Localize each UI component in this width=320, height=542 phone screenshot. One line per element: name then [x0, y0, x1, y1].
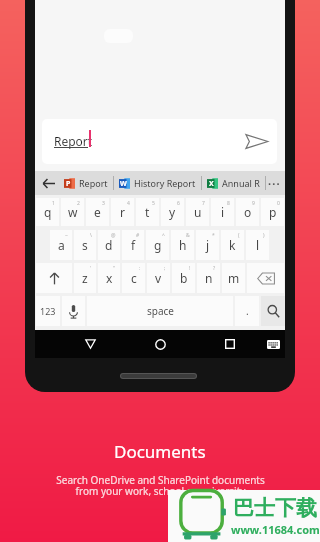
staticText: s	[82, 237, 88, 253]
staticText: j	[206, 237, 210, 253]
button[interactable]: o	[236, 198, 259, 226]
button[interactable]: .	[235, 296, 259, 326]
staticText: Report	[54, 133, 93, 149]
staticText: @	[111, 232, 116, 239]
staticText: k	[229, 237, 236, 253]
button[interactable]: c	[122, 263, 145, 293]
staticText: 8	[227, 200, 230, 207]
staticText: l	[256, 237, 260, 253]
button[interactable]: j	[196, 230, 219, 260]
staticText: W	[120, 179, 127, 189]
button[interactable]: m	[222, 263, 245, 293]
staticText: 6	[177, 200, 180, 207]
button[interactable]: W	[114, 171, 202, 195]
button[interactable]: a	[50, 230, 72, 260]
staticText: 3	[102, 200, 105, 207]
button[interactable]: n	[197, 263, 220, 293]
button[interactable]: x	[98, 263, 120, 293]
button[interactable]: space	[87, 296, 233, 326]
staticText: o	[244, 204, 252, 220]
staticText: &	[186, 232, 190, 239]
button[interactable]: k	[221, 230, 244, 260]
staticText: u	[194, 204, 202, 220]
staticText: 2	[77, 200, 80, 207]
staticText: 9	[252, 200, 255, 207]
staticText: p	[269, 204, 277, 220]
button[interactable]: z	[74, 263, 96, 293]
staticText: )	[263, 232, 265, 239]
button[interactable]: Backspace	[247, 263, 284, 293]
button[interactable]: P	[59, 171, 114, 195]
button[interactable]: p	[261, 198, 284, 226]
staticText: www.11684.com	[231, 522, 320, 537]
button[interactable]: f	[122, 230, 144, 260]
button[interactable]: r	[111, 198, 134, 226]
staticText: y	[169, 204, 176, 220]
staticText: c	[131, 270, 137, 286]
staticText: f	[131, 237, 136, 253]
staticText: x	[106, 270, 113, 286]
staticText: \	[90, 232, 92, 239]
staticText: *	[212, 232, 215, 239]
button[interactable]: 123	[36, 296, 60, 326]
staticText: ^	[162, 232, 165, 239]
staticText: w	[68, 204, 78, 220]
staticText: Annual R	[222, 177, 260, 189]
button[interactable]: y	[161, 198, 184, 226]
staticText: 7	[202, 200, 205, 207]
staticText: 123	[40, 305, 56, 317]
staticText: Documents	[114, 440, 206, 463]
button[interactable]: Recent apps	[219, 333, 241, 355]
staticText: n	[205, 270, 213, 286]
staticText: d	[105, 237, 113, 253]
staticText: 1	[52, 200, 55, 207]
button[interactable]: t	[136, 198, 159, 226]
button[interactable]: Switch keyboard	[263, 334, 283, 354]
button[interactable]: s	[74, 230, 96, 260]
staticText: h	[179, 237, 187, 253]
staticText: Report	[79, 177, 108, 189]
staticText: 4	[127, 200, 130, 207]
button[interactable]: More suggestions	[266, 171, 282, 195]
button[interactable]: l	[246, 230, 269, 260]
button[interactable]: Voice input	[62, 296, 85, 326]
button[interactable]: u	[186, 198, 209, 226]
button[interactable]: w	[61, 198, 84, 226]
button[interactable]: Home	[149, 333, 171, 355]
button[interactable]: Shift	[36, 263, 72, 293]
staticText: v	[155, 270, 162, 286]
button[interactable]: g	[146, 230, 169, 260]
staticText: r	[120, 204, 125, 220]
button[interactable]: Back	[79, 333, 101, 355]
staticText: ;	[164, 265, 166, 272]
staticText: b	[180, 270, 188, 286]
staticText: e	[94, 204, 101, 220]
staticText: (	[238, 232, 240, 239]
button[interactable]: q	[36, 198, 59, 226]
staticText: History Report	[134, 177, 196, 189]
button[interactable]: d	[98, 230, 120, 260]
button[interactable]: v	[147, 263, 170, 293]
staticText: m	[228, 270, 240, 286]
button[interactable]: Send	[239, 131, 273, 152]
button[interactable]: Search	[261, 296, 285, 326]
staticText: g	[154, 237, 162, 253]
staticText: i	[221, 204, 225, 220]
staticText: a	[58, 237, 65, 253]
button[interactable]: X	[202, 171, 266, 195]
staticText: z	[82, 270, 88, 286]
staticText: !	[189, 265, 191, 272]
button[interactable]: h	[171, 230, 194, 260]
button[interactable]: e	[86, 198, 109, 226]
staticText: space	[147, 304, 174, 318]
button[interactable]: Report	[42, 119, 277, 164]
button[interactable]: i	[211, 198, 234, 226]
staticText: X	[209, 179, 214, 189]
staticText: ~	[65, 232, 68, 239]
staticText: t	[145, 204, 150, 220]
staticText: #	[136, 232, 140, 239]
button[interactable]: Back	[37, 171, 59, 195]
staticText: 0	[277, 200, 280, 207]
button[interactable]: b	[172, 263, 195, 293]
staticText: q	[44, 204, 52, 220]
